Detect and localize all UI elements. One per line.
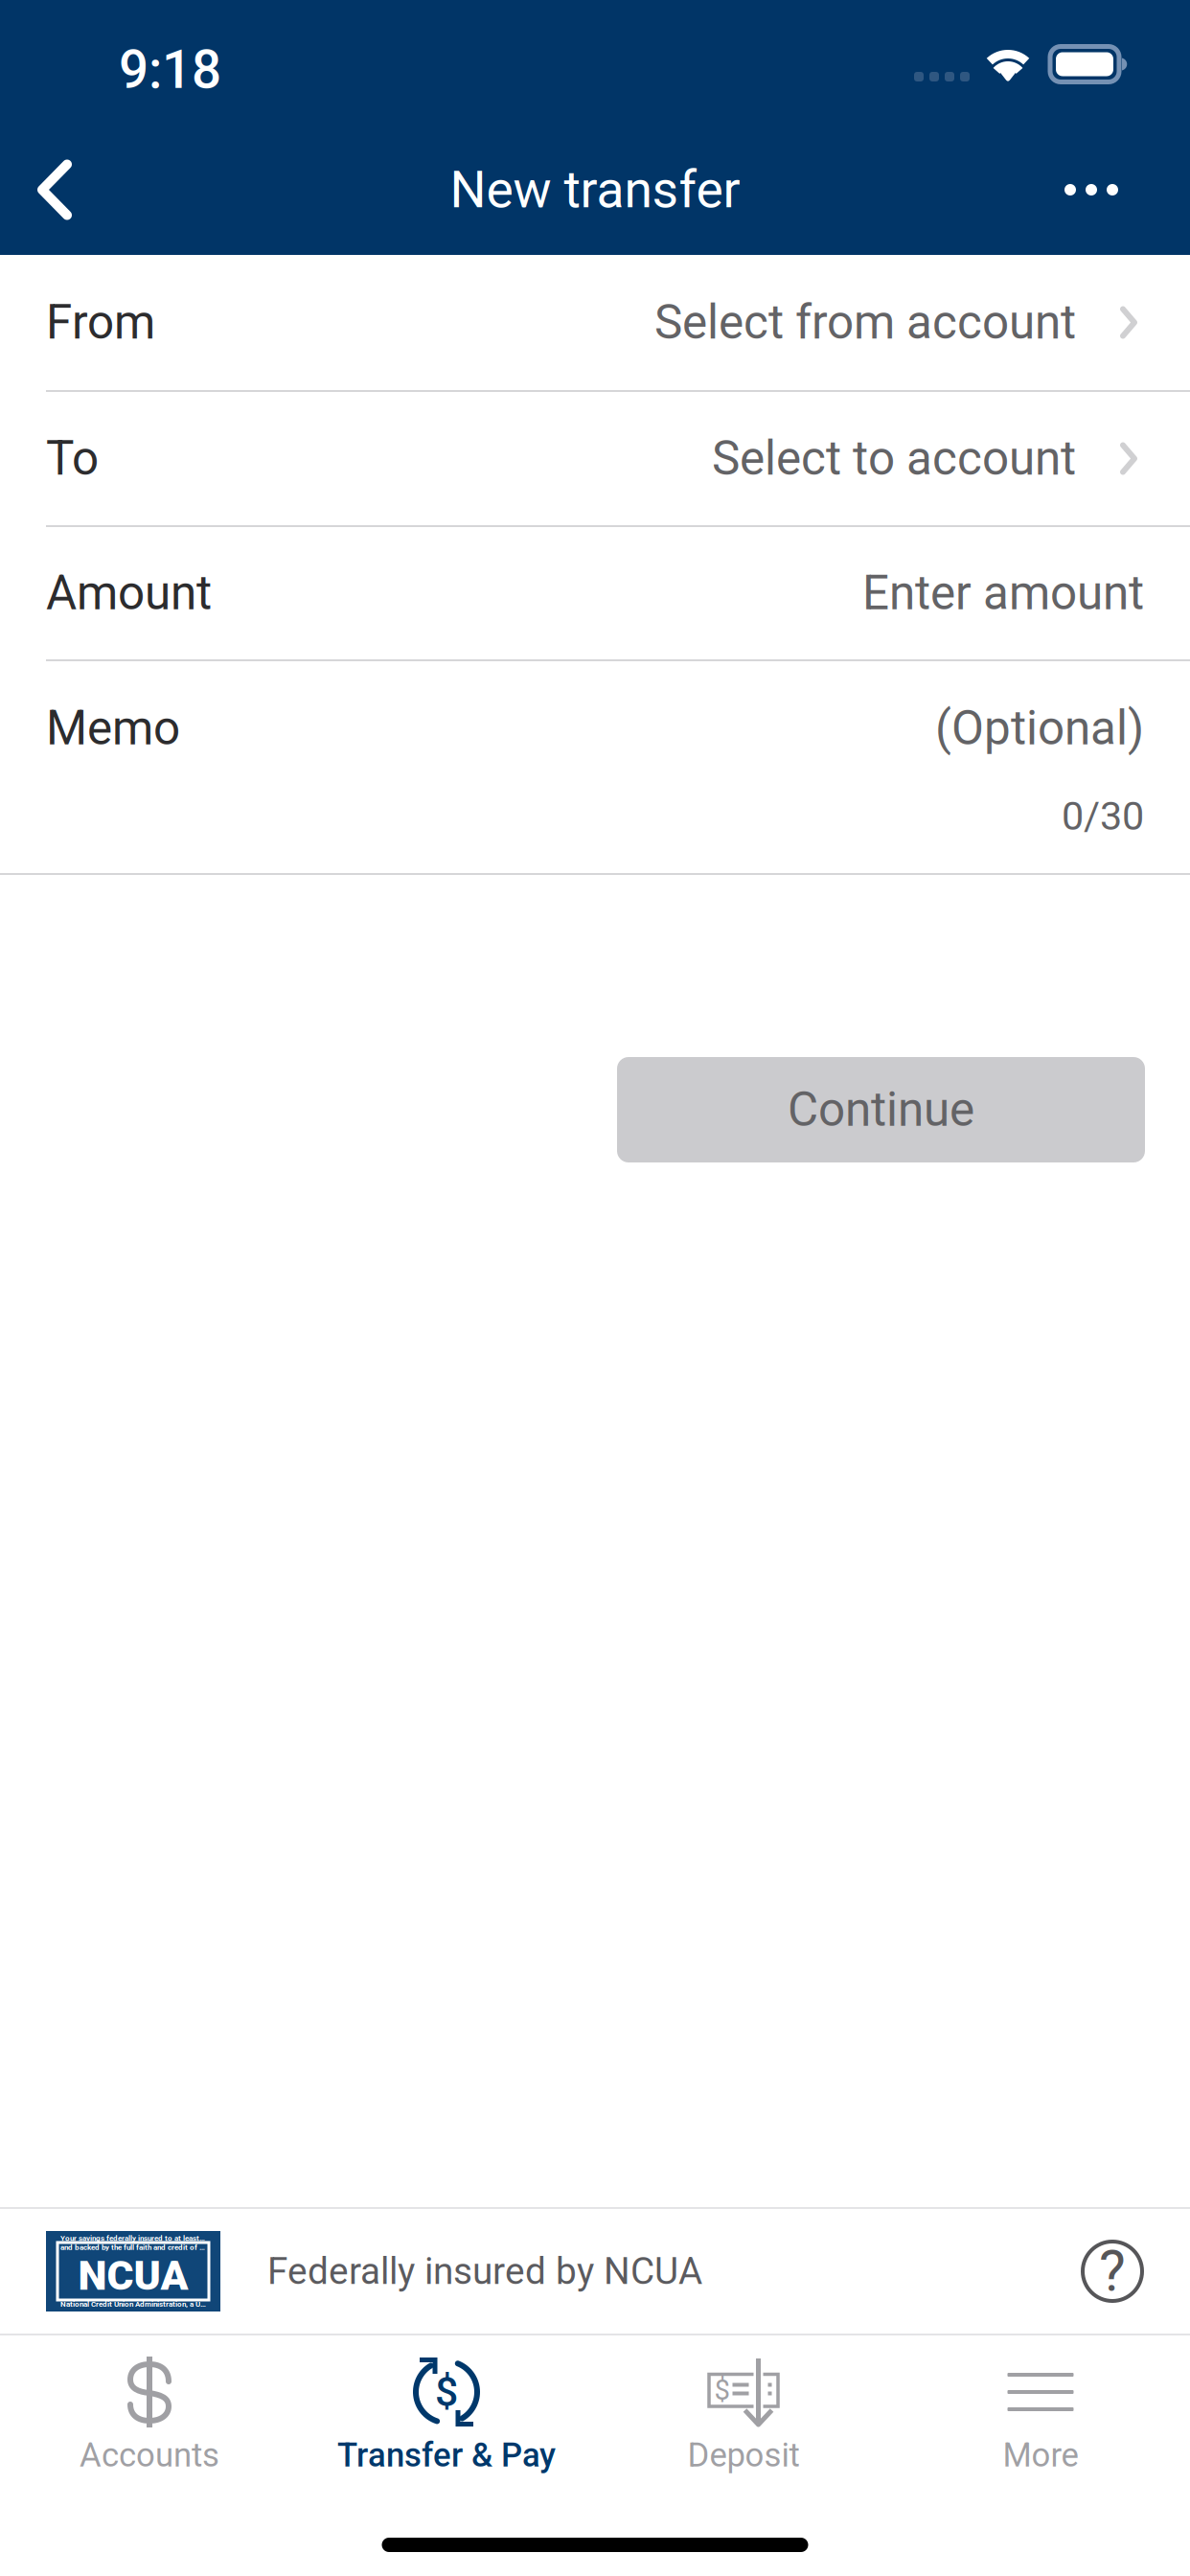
button[interactable]: To (0, 392, 1190, 525)
staticText: To (46, 431, 99, 486)
staticText: From (46, 295, 155, 350)
button[interactable]: More options (1036, 125, 1190, 255)
staticText: and backed by the full faith and credit … (60, 2243, 206, 2252)
staticText: (Optional) (935, 701, 1144, 756)
button[interactable]: Amount (0, 527, 1190, 659)
staticText: National Credit Union Administration, a … (60, 2300, 206, 2309)
button[interactable]: Continue (617, 1057, 1145, 1162)
staticText: Continue (788, 1082, 974, 1137)
staticText: New transfer (450, 160, 740, 220)
staticText: ? (1099, 2238, 1126, 2304)
staticText: Transfer & Pay (337, 2436, 556, 2475)
button[interactable]: $ (298, 2335, 595, 2472)
staticText: Select to account (712, 431, 1076, 486)
staticText: Amount (46, 566, 212, 621)
staticText: More (1003, 2436, 1078, 2475)
staticText: Select from account (654, 295, 1076, 350)
button[interactable]: Accounts (1, 2335, 298, 2472)
staticText: Enter amount (862, 566, 1144, 621)
button[interactable]: More (892, 2335, 1189, 2472)
staticText: $ (714, 2374, 730, 2407)
button[interactable]: Help (1083, 2242, 1142, 2301)
staticText: 0/30 (1062, 793, 1144, 839)
staticText: Federally insured by NCUA (267, 2249, 702, 2293)
button[interactable]: $ (595, 2335, 892, 2472)
staticText: NCUA (78, 2252, 188, 2300)
button[interactable]: From (0, 255, 1190, 390)
staticText: 9:18 (119, 39, 221, 101)
staticText: Your savings federally insured to at lea… (60, 2234, 206, 2243)
staticText: Deposit (687, 2436, 800, 2475)
button[interactable]: Back (0, 125, 101, 255)
staticText: Accounts (80, 2436, 219, 2475)
staticText: $ (435, 2368, 458, 2416)
staticText: Memo (46, 701, 180, 756)
